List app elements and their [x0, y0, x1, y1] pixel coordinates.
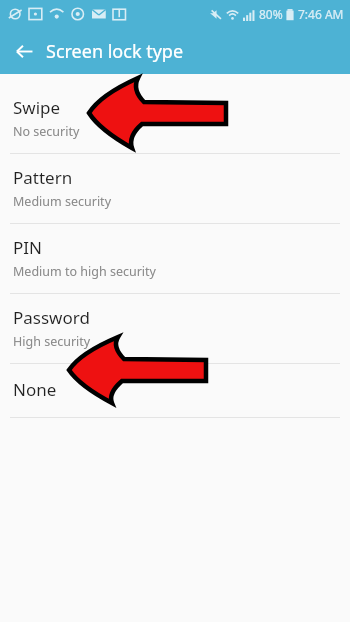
staticText: 80% — [259, 6, 283, 22]
button[interactable]: Pattern — [0, 154, 350, 223]
staticText: None — [13, 378, 57, 401]
staticText: Swipe — [13, 96, 61, 119]
staticText: Screen lock type — [46, 39, 184, 64]
button[interactable]: Swipe — [0, 84, 350, 153]
staticText: 7:46 AM — [298, 6, 344, 22]
button[interactable]: PIN — [0, 224, 350, 293]
button[interactable]: Back — [8, 35, 40, 67]
staticText: Medium to high security — [13, 263, 156, 280]
staticText: High security — [13, 333, 91, 350]
staticText: Medium security — [13, 193, 112, 210]
button[interactable]: Password — [0, 294, 350, 363]
staticText: Password — [13, 306, 90, 329]
staticText: PIN — [13, 236, 42, 259]
staticText: No security — [13, 123, 80, 140]
button[interactable]: None — [0, 364, 350, 417]
staticText: Pattern — [13, 166, 73, 189]
